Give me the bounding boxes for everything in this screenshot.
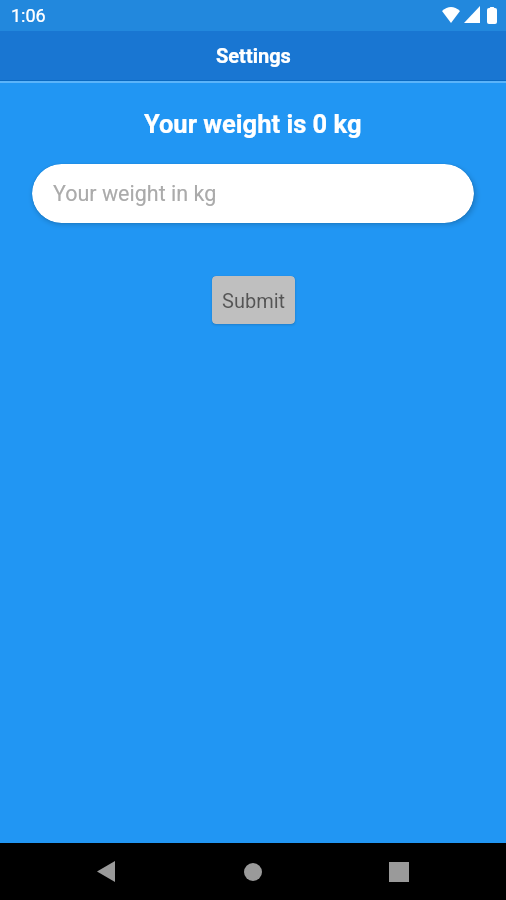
staticText: Settings xyxy=(216,44,291,67)
staticText: 1:06 xyxy=(11,5,46,26)
staticText: Your weight is 0 kg xyxy=(144,109,362,139)
button[interactable]: Your weight in kg xyxy=(32,164,474,223)
button[interactable]: Submit xyxy=(212,276,295,324)
button[interactable]: Back xyxy=(77,843,135,900)
button[interactable]: Home xyxy=(224,843,282,900)
staticText: Submit xyxy=(222,289,286,312)
staticText: Your weight in kg xyxy=(53,181,217,206)
button[interactable]: Recent apps xyxy=(370,843,428,900)
